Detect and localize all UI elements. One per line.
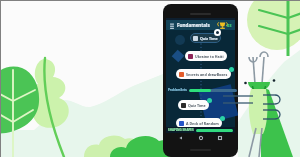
staticText: Fundamentals <box>177 22 210 28</box>
button[interactable]: A Deck of Random <box>176 118 222 128</box>
staticText: 03 <box>227 23 232 28</box>
button[interactable]: Secrets and drawBoxes <box>176 69 231 79</box>
staticText: ProblemSets <box>168 88 187 92</box>
button[interactable]: Recents <box>215 133 225 143</box>
staticText: Quiz Time <box>200 36 218 41</box>
staticText: Quiz Time <box>188 103 206 108</box>
staticText: Secrets and drawBoxes <box>186 72 228 77</box>
button[interactable]: Ukraine to Haiti <box>185 51 227 61</box>
staticText: Ukraine to Haiti <box>195 54 224 59</box>
button[interactable]: Quiz Time <box>178 100 209 110</box>
button[interactable]: Home <box>196 133 206 143</box>
button[interactable]: Menu <box>169 22 175 28</box>
button[interactable]: Trophies <box>218 21 227 30</box>
staticText: A Deck of Random <box>186 121 219 126</box>
button[interactable]: Pointer <box>214 29 221 36</box>
button[interactable]: Back <box>176 133 186 143</box>
button[interactable]: Quiz Time <box>190 33 221 43</box>
staticText: SHAPING SHAPES <box>168 128 194 132</box>
